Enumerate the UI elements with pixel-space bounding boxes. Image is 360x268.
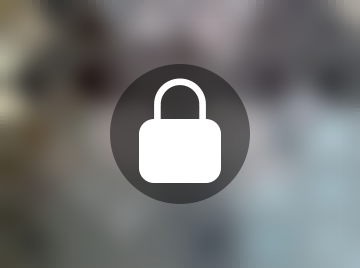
button[interactable]: Content locked — [0, 0, 360, 268]
